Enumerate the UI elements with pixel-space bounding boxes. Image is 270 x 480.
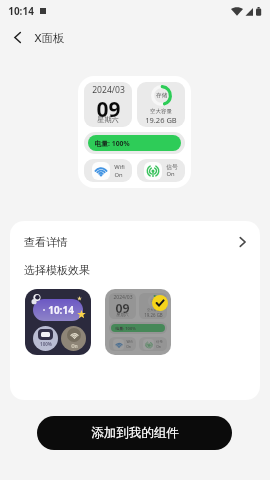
staticText: 10:14 <box>8 4 34 18</box>
staticText: On <box>71 343 78 349</box>
staticText: 空大容量 <box>147 308 160 312</box>
staticText: 19.26 GB <box>144 312 163 318</box>
staticText: 2024/03 <box>92 84 125 96</box>
button[interactable]: Back <box>6 26 29 49</box>
staticText: 电量: 100% <box>94 139 130 148</box>
staticText: X面板 <box>34 30 65 46</box>
button[interactable]: 添加到我的组件 <box>37 416 232 450</box>
button[interactable]: 10:14 <box>25 289 91 355</box>
staticText: 选择模板效果 <box>24 263 90 277</box>
staticText: 添加到我的组件 <box>91 425 179 441</box>
staticText: 09 <box>115 300 130 317</box>
staticText: Wifi <box>126 339 133 344</box>
staticText: Wifi <box>114 163 125 171</box>
staticText: 09 <box>96 95 121 124</box>
staticText: 星期六 <box>97 115 119 124</box>
staticText: 信号 <box>166 163 178 170</box>
staticText: 100% <box>40 341 52 347</box>
staticText: 存储 <box>156 92 167 99</box>
staticText: 存储 <box>151 299 158 303</box>
staticText: On <box>126 344 131 349</box>
staticText: 星期六 <box>116 312 129 317</box>
staticText: On <box>156 344 161 349</box>
staticText: 电量: 100% <box>115 326 136 331</box>
staticText: 10:14 <box>48 303 74 317</box>
staticText: 空大容量 <box>150 108 172 115</box>
staticText: 信号 <box>156 340 163 344</box>
staticText: 19.26 GB <box>145 115 177 125</box>
staticText: 查看详情 <box>24 235 68 249</box>
staticText: 2024/03 <box>113 294 133 301</box>
button[interactable]: 查看详情 <box>10 221 260 263</box>
button[interactable]: 2024/03 <box>105 289 171 355</box>
staticText: On <box>114 171 123 179</box>
staticText: On <box>166 170 175 178</box>
